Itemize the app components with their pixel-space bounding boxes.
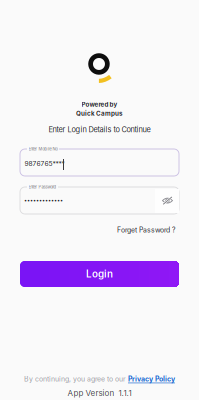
staticText: By continuing, you agree to our xyxy=(24,375,128,383)
staticText: Enter Mobile No xyxy=(28,146,57,151)
staticText: ••••••••••••• xyxy=(24,197,63,204)
staticText: Enter Login Details to Continue xyxy=(48,125,150,134)
staticText: Forget Password ? xyxy=(117,226,176,234)
staticText: Enter Password xyxy=(28,184,56,189)
staticText: Privacy Policy xyxy=(128,375,175,383)
staticText: App Version 1.1.1 xyxy=(67,388,131,398)
staticText: Quick Campus xyxy=(76,110,123,117)
button[interactable]: Show password xyxy=(155,189,179,213)
button[interactable]: Login xyxy=(20,261,179,287)
button[interactable]: Forget Password ? xyxy=(117,226,176,234)
button[interactable]: Privacy Policy xyxy=(128,375,175,383)
staticText: Login xyxy=(86,268,113,280)
staticText: Powered by xyxy=(81,101,117,108)
staticText: 9876765**** xyxy=(24,159,64,168)
